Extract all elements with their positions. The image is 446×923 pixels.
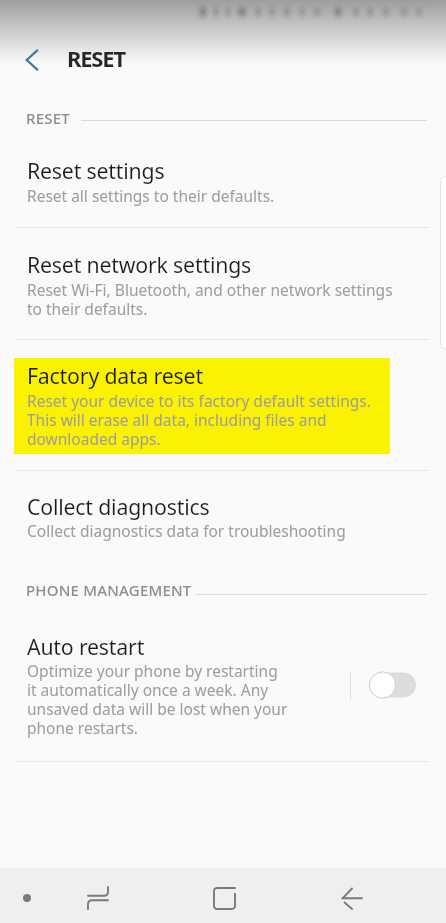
staticText: Collect diagnostics data for troubleshoo… — [27, 520, 346, 541]
staticText: Optimize your phone by restarting it aut… — [27, 660, 288, 739]
staticText: Reset your device to its factory default… — [27, 390, 371, 450]
button[interactable] — [0, 232, 446, 339]
staticText: Collect diagnostics — [27, 492, 210, 521]
button[interactable] — [0, 344, 446, 470]
staticText: Auto restart — [27, 632, 145, 661]
staticText: RESET — [67, 43, 125, 73]
button[interactable]: Navigation hint — [4, 874, 49, 921]
button[interactable]: Navigate up — [13, 42, 51, 78]
staticText: Reset network settings — [27, 250, 252, 279]
button[interactable] — [0, 478, 446, 558]
staticText: RESET — [26, 108, 70, 128]
button[interactable] — [0, 140, 446, 227]
staticText: Reset Wi-Fi, Bluetooth, and other networ… — [27, 279, 393, 320]
button[interactable]: Recent apps — [78, 878, 118, 918]
staticText: Reset all settings to their defaults. — [27, 185, 275, 206]
button[interactable]: Home — [204, 878, 244, 918]
button[interactable]: Back — [332, 878, 372, 918]
staticText: Factory data reset — [27, 361, 203, 390]
staticText: PHONE MANAGEMENT — [26, 580, 192, 600]
button[interactable] — [0, 618, 446, 760]
button[interactable]: Auto restart switch, off — [369, 671, 416, 699]
staticText: Reset settings — [27, 156, 165, 185]
